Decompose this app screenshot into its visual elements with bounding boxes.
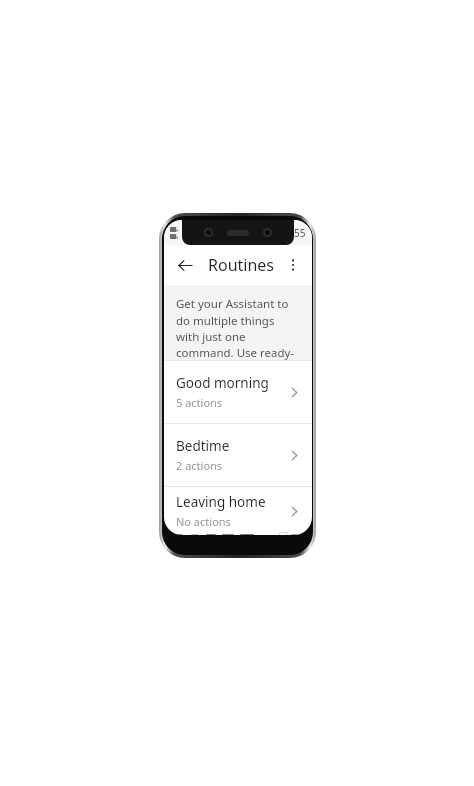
- staticText: Routines: [208, 254, 275, 276]
- staticText: Good morning: [176, 374, 269, 392]
- staticText: 12:55: [280, 226, 306, 240]
- staticText: 98%: [242, 227, 260, 239]
- button[interactable]: Leaving home: [164, 487, 312, 535]
- staticText: No actions: [176, 514, 231, 529]
- staticText: 5 actions: [176, 395, 223, 410]
- button[interactable]: Back: [170, 250, 200, 280]
- button[interactable]: Bedtime: [164, 424, 312, 486]
- staticText: 2 actions: [176, 458, 223, 473]
- button[interactable]: Good morning: [164, 361, 312, 423]
- button[interactable]: More options: [279, 251, 307, 279]
- staticText: Get your Assistant to do multiple things…: [176, 296, 300, 360]
- staticText: Bedtime: [176, 437, 230, 455]
- staticText: Leaving home: [176, 493, 266, 511]
